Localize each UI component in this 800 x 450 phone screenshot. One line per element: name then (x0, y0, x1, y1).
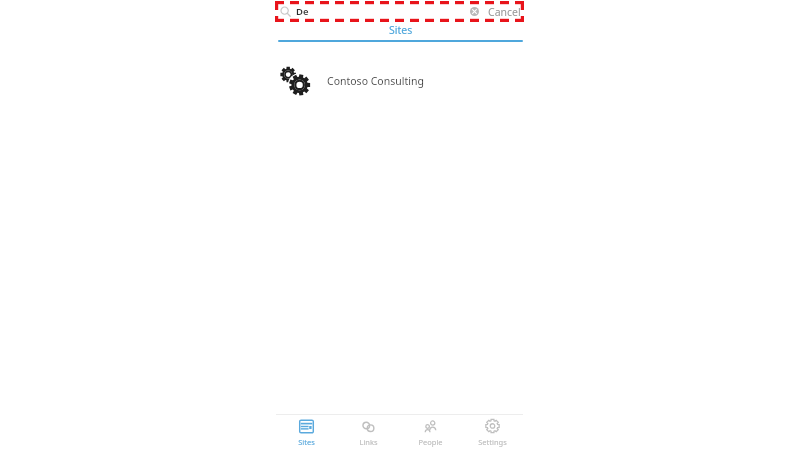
staticText: Links (359, 437, 378, 447)
button[interactable]: Contoso Consulting (276, 64, 523, 98)
button[interactable]: Sites (278, 23, 523, 42)
staticText: De (296, 5, 309, 18)
staticText: Sites (298, 437, 315, 447)
button[interactable]: Sites (276, 418, 337, 447)
button[interactable]: Cancel (488, 5, 522, 19)
button[interactable]: People (399, 418, 461, 447)
button[interactable]: Settings (461, 418, 523, 447)
button[interactable]: De (276, 0, 523, 23)
staticText: Contoso Consulting (327, 74, 424, 88)
button[interactable]: Clear search (468, 5, 481, 18)
staticText: People (418, 437, 443, 447)
staticText: Cancel (488, 5, 521, 19)
staticText: Settings (478, 437, 507, 447)
staticText: Sites (389, 23, 413, 37)
button[interactable]: Links (337, 418, 399, 447)
